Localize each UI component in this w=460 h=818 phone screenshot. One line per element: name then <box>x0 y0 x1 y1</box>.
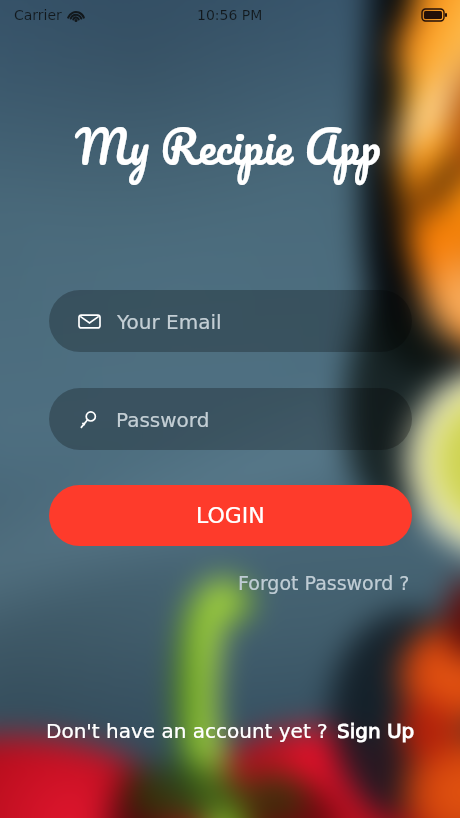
staticText: Don't have an account yet ? <box>46 719 328 742</box>
staticText: My Recipie App <box>75 108 381 185</box>
button[interactable]: LOGIN <box>49 485 412 546</box>
button[interactable]: Password <box>49 388 412 450</box>
button[interactable]: Forgot Password ? <box>232 566 416 600</box>
staticText: Password <box>116 408 210 431</box>
staticText: 10:56 PM <box>197 7 263 23</box>
staticText: Carrier <box>14 7 62 23</box>
button[interactable]: Sign Up <box>328 719 415 742</box>
button[interactable]: Your Email <box>49 290 412 352</box>
staticText: LOGIN <box>196 503 265 529</box>
staticText: Your Email <box>117 310 222 333</box>
